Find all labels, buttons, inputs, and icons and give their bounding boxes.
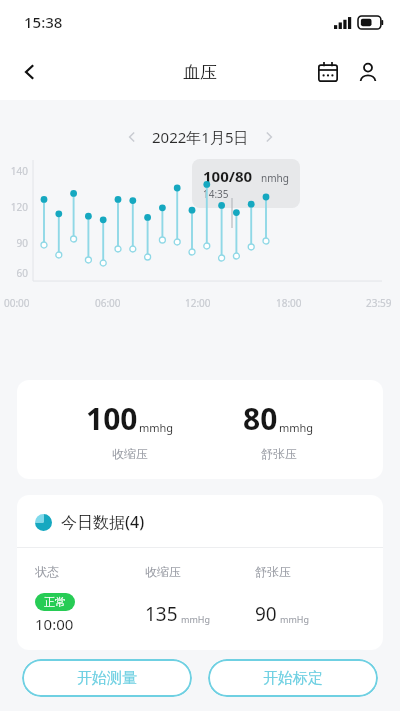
staticText: mmhg [139,420,174,435]
staticText: 今日数据(4) [61,511,145,533]
staticText: 60 [2,266,28,280]
staticText: 18:00 [276,296,302,310]
staticText: 血压 [183,62,217,83]
button[interactable]: 正常 [17,579,383,650]
button[interactable]: Back [8,50,52,94]
button[interactable]: Next day [255,123,283,151]
button[interactable]: Calendar [308,52,348,92]
staticText: 舒张压 [255,564,365,579]
staticText: 正常 [44,595,66,609]
staticText: 06:00 [95,296,121,310]
staticText: 收缩压 [112,446,148,461]
staticText: 收缩压 [145,564,255,579]
button[interactable]: 100 [17,380,383,479]
staticText: 90 [2,236,28,250]
staticText: 状态 [35,564,145,579]
staticText: 15:38 [24,12,63,32]
button[interactable]: 开始测量 [22,659,192,697]
staticText: 14:35 [203,187,229,201]
staticText: 135 [145,601,178,627]
staticText: nmhg [261,171,289,185]
staticText: mmhg [279,420,314,435]
staticText: 120 [2,200,28,214]
staticText: 90 [255,601,277,627]
staticText: 10:00 [35,614,74,634]
staticText: 2022年1月5日 [152,127,249,147]
staticText: 80 [243,398,278,439]
button[interactable]: Profile [348,52,388,92]
staticText: 开始标定 [263,669,323,688]
staticText: 开始测量 [77,669,137,688]
staticText: 12:00 [185,296,211,310]
button[interactable]: 开始标定 [208,659,378,697]
staticText: 100/80 [203,166,253,186]
staticText: 100 [86,398,138,439]
staticText: 舒张压 [261,446,297,461]
staticText: mmHg [181,613,211,625]
staticText: 23:59 [366,296,392,310]
staticText: 140 [2,164,28,178]
button[interactable]: Previous day [118,123,146,151]
staticText: mmHg [280,613,310,625]
button[interactable]: 今日数据(4) [17,495,383,547]
staticText: 00:00 [4,296,30,310]
